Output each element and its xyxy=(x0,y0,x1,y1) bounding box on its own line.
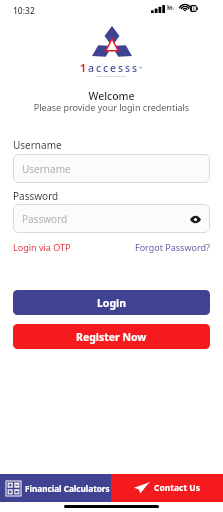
button[interactable]: Show password xyxy=(187,211,203,227)
button[interactable]: Contact Us xyxy=(111,474,223,502)
staticText: Welcome xyxy=(0,89,223,103)
button[interactable]: Financial Calculators xyxy=(0,474,111,502)
staticText: Please provide your login credentials xyxy=(0,101,223,113)
staticText: WiFi xyxy=(167,7,174,11)
staticText: Register Now xyxy=(76,330,147,344)
button[interactable]: Username xyxy=(13,154,210,183)
staticText: Username xyxy=(22,162,71,176)
other: Financial Calculators xyxy=(6,481,21,496)
staticText: accesss xyxy=(88,61,139,75)
staticText: India Access Simplified xyxy=(96,74,127,77)
button[interactable]: Login xyxy=(13,290,210,315)
button[interactable]: Password xyxy=(13,204,210,233)
staticText: ™ xyxy=(139,66,143,71)
staticText: Contact Us xyxy=(154,482,201,494)
staticText: Password xyxy=(22,212,68,226)
staticText: 1 xyxy=(80,61,88,75)
button[interactable]: Register Now xyxy=(13,324,210,349)
button[interactable]: Login via OTP xyxy=(13,241,71,253)
staticText: Financial Calculators xyxy=(25,483,110,494)
button[interactable]: Forgot Password? xyxy=(135,241,210,253)
staticText: Login xyxy=(97,296,127,310)
staticText: Username xyxy=(13,138,62,152)
staticText: Vo xyxy=(167,4,172,9)
other: Contact Us xyxy=(134,482,149,494)
staticText: 10:32 xyxy=(13,5,35,17)
staticText: Password xyxy=(13,189,59,203)
